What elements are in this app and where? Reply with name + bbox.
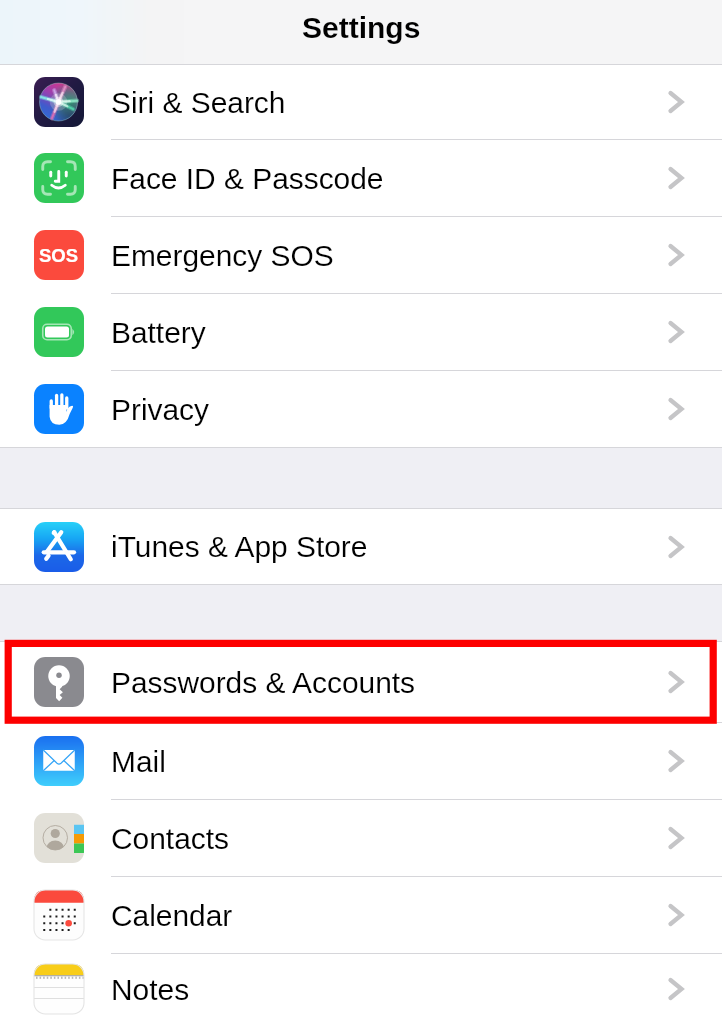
- staticText: Siri & Search: [111, 86, 286, 119]
- button[interactable]: Emergency SOS: [0, 217, 722, 293]
- button[interactable]: Notes: [0, 954, 722, 1024]
- button[interactable]: Privacy: [0, 371, 722, 447]
- staticText: Emergency SOS: [111, 239, 334, 272]
- staticText: Calendar: [111, 899, 233, 932]
- staticText: Privacy: [111, 393, 209, 426]
- button[interactable]: Calendar: [0, 877, 722, 953]
- button[interactable]: Face ID & Passcode: [0, 140, 722, 216]
- staticText: Settings: [302, 11, 421, 45]
- button[interactable]: Mail: [0, 723, 722, 799]
- staticText: Face ID & Passcode: [111, 162, 384, 195]
- staticText: Passwords & Accounts: [111, 666, 416, 699]
- button[interactable]: Battery: [0, 294, 722, 370]
- staticText: Contacts: [111, 822, 229, 855]
- button[interactable]: iTunes & App Store: [0, 509, 722, 584]
- staticText: SOS: [39, 245, 79, 266]
- button[interactable]: Passwords & Accounts: [0, 642, 722, 722]
- button[interactable]: Siri & Search: [0, 65, 722, 139]
- button[interactable]: Contacts: [0, 800, 722, 876]
- staticText: Mail: [111, 745, 166, 778]
- staticText: iTunes & App Store: [111, 530, 368, 563]
- staticText: Battery: [111, 316, 206, 349]
- staticText: Notes: [111, 973, 190, 1006]
